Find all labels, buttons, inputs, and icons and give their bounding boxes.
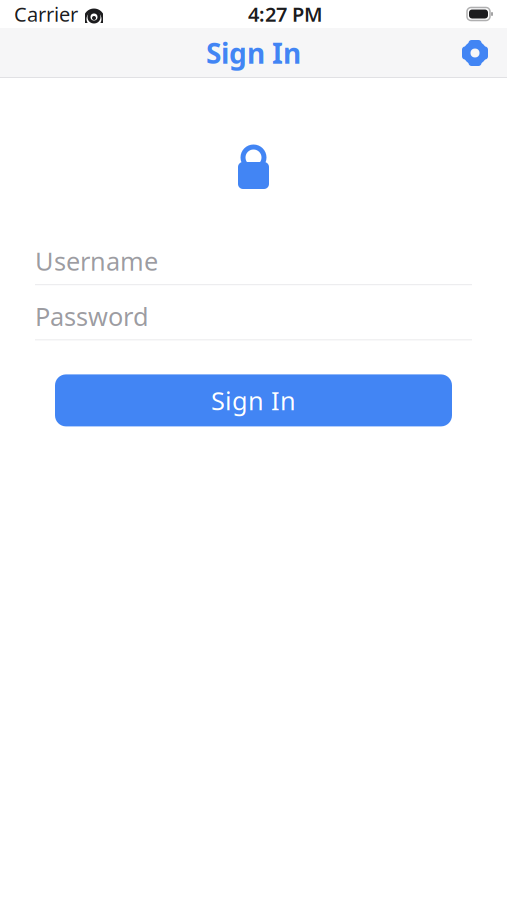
button[interactable]: Settings — [453, 31, 497, 75]
staticText: Sign In — [211, 384, 296, 417]
button[interactable]: Sign In — [55, 374, 452, 426]
staticText: Password — [35, 299, 149, 333]
staticText: Carrier — [14, 1, 78, 27]
staticText: 4:27 PM — [248, 1, 323, 27]
staticText: Sign In — [206, 34, 301, 72]
staticText: Username — [35, 244, 158, 278]
